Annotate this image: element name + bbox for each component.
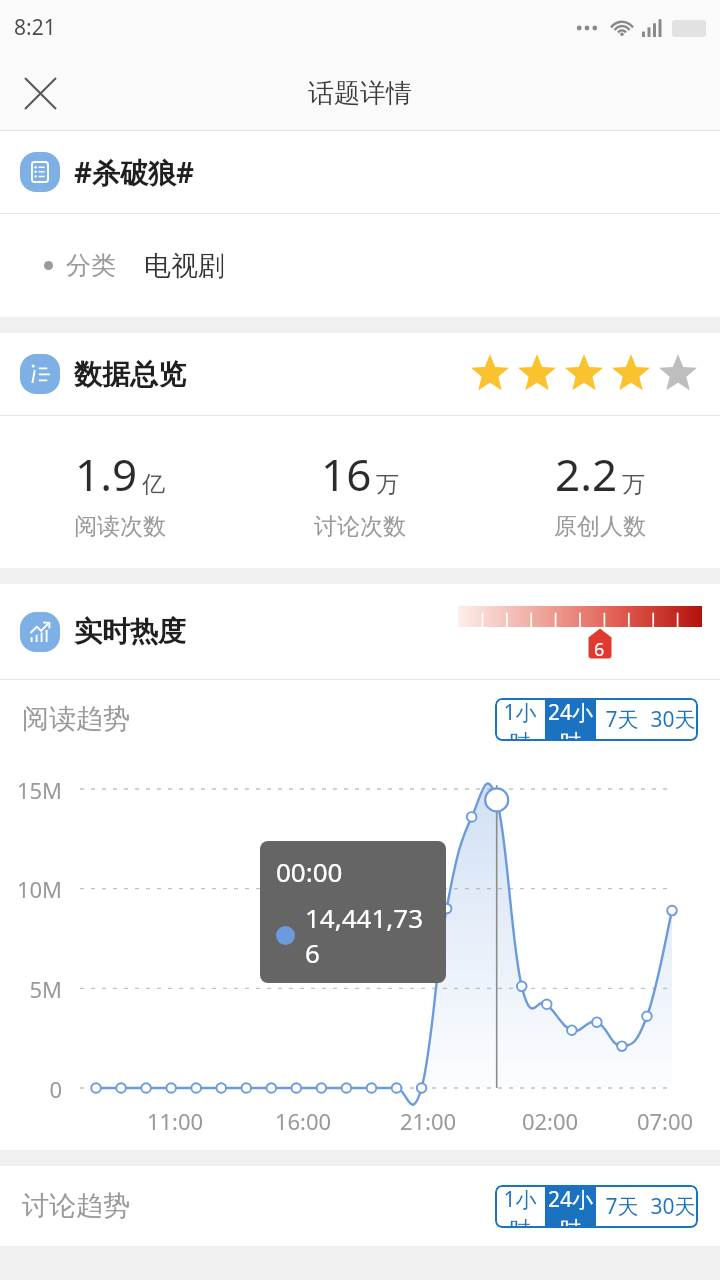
- staticText: 8:21: [14, 13, 56, 42]
- staticText: 原创人数: [554, 512, 646, 541]
- button[interactable]: #杀破狼#: [0, 131, 720, 213]
- staticText: #杀破狼#: [74, 153, 195, 191]
- staticText: 30天: [650, 1192, 696, 1221]
- staticText: 阅读次数: [74, 512, 166, 541]
- staticText: 阅读趋势: [22, 702, 130, 736]
- staticText: 0: [0, 1074, 62, 1104]
- button[interactable]: 实时热度: [0, 584, 720, 679]
- staticText: 话题详情: [308, 77, 412, 110]
- button[interactable]: 1小时: [495, 1185, 545, 1228]
- button[interactable]: 7天: [596, 698, 647, 741]
- staticText: 1.9: [75, 444, 138, 504]
- staticText: 07:00: [623, 1106, 707, 1136]
- staticText: 分类: [66, 250, 116, 281]
- staticText: 24小时: [545, 698, 596, 741]
- staticText: 7天: [605, 1192, 639, 1221]
- staticText: 实时热度: [74, 614, 186, 649]
- staticText: 万: [376, 470, 399, 499]
- staticText: 讨论次数: [314, 512, 406, 541]
- button[interactable]: 1小时: [495, 698, 545, 741]
- button[interactable]: Close: [12, 65, 68, 121]
- staticText: 万: [622, 470, 645, 499]
- staticText: 16: [321, 444, 372, 504]
- staticText: 数据总览: [74, 357, 186, 392]
- staticText: 24小时: [545, 1185, 596, 1228]
- staticText: 21:00: [386, 1106, 470, 1136]
- button[interactable]: 数据总览: [0, 333, 720, 415]
- staticText: 10M: [0, 874, 62, 904]
- staticText: 11:00: [133, 1106, 217, 1136]
- staticText: 6: [594, 637, 605, 662]
- staticText: 2.2: [555, 444, 618, 504]
- button[interactable]: 30天: [647, 698, 698, 741]
- staticText: 亿: [142, 470, 165, 499]
- button[interactable]: 24小时: [545, 698, 596, 741]
- staticText: 14,441,736: [305, 900, 430, 970]
- staticText: 16:00: [261, 1106, 345, 1136]
- button[interactable]: 30天: [647, 1185, 698, 1228]
- staticText: 1小时: [495, 698, 545, 741]
- staticText: 30天: [650, 705, 696, 734]
- staticText: 5M: [0, 974, 62, 1004]
- staticText: 电视剧: [144, 249, 225, 283]
- staticText: 02:00: [508, 1106, 592, 1136]
- staticText: 00:00: [276, 854, 343, 889]
- staticText: 15M: [0, 775, 62, 805]
- button[interactable]: 7天: [596, 1185, 647, 1228]
- staticText: 1小时: [495, 1185, 545, 1228]
- staticText: 7天: [605, 705, 639, 734]
- button[interactable]: 24小时: [545, 1185, 596, 1228]
- staticText: 讨论趋势: [22, 1189, 130, 1223]
